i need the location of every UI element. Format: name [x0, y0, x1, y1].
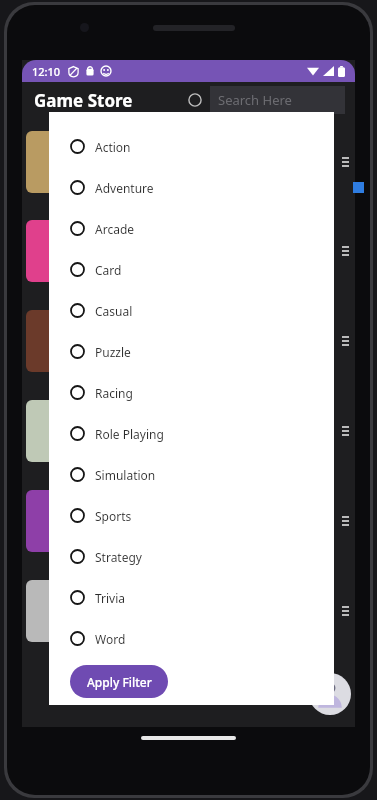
button[interactable]: Card	[49, 249, 334, 290]
button[interactable]	[22, 566, 355, 656]
button[interactable]: Sports	[49, 495, 334, 536]
button[interactable]: Trivia	[49, 577, 334, 618]
button[interactable]	[22, 118, 355, 206]
button[interactable]: Word	[49, 618, 334, 659]
staticText: 12:10	[32, 64, 61, 79]
staticText: Card	[95, 262, 122, 278]
button[interactable]: Arcade	[49, 208, 334, 249]
button[interactable]: Strategy	[49, 536, 334, 577]
staticText: Apply Filter	[87, 674, 152, 690]
staticText: Role Playing	[95, 426, 164, 442]
button[interactable]	[22, 386, 355, 476]
staticText: Game Store	[34, 89, 133, 112]
staticText: Puzzle	[95, 344, 131, 360]
button[interactable]	[22, 296, 355, 386]
staticText: Word	[95, 631, 126, 647]
button[interactable]: Search Here	[210, 86, 345, 114]
button[interactable]: Simulation	[49, 454, 334, 495]
button[interactable]: Racing	[49, 372, 334, 413]
button[interactable]	[22, 476, 355, 566]
staticText: Strategy	[95, 549, 142, 565]
button[interactable]: Role Playing	[49, 413, 334, 454]
button[interactable]	[22, 206, 355, 296]
button[interactable]: Puzzle	[49, 331, 334, 372]
staticText: Casual	[95, 303, 133, 319]
other: Search	[188, 93, 202, 107]
button[interactable]: Action	[49, 126, 334, 167]
button[interactable]: Apply Filter	[70, 665, 168, 698]
button[interactable]: Casual	[49, 290, 334, 331]
staticText: Sports	[95, 508, 132, 524]
staticText: Action	[95, 139, 131, 155]
staticText: Search Here	[218, 91, 292, 109]
staticText: Trivia	[95, 590, 126, 606]
button[interactable]: Adventure	[49, 167, 334, 208]
staticText: Adventure	[95, 180, 154, 196]
staticText: Racing	[95, 385, 133, 401]
button[interactable]: Profile	[309, 673, 351, 715]
staticText: Simulation	[95, 467, 156, 483]
staticText: Arcade	[95, 221, 135, 237]
